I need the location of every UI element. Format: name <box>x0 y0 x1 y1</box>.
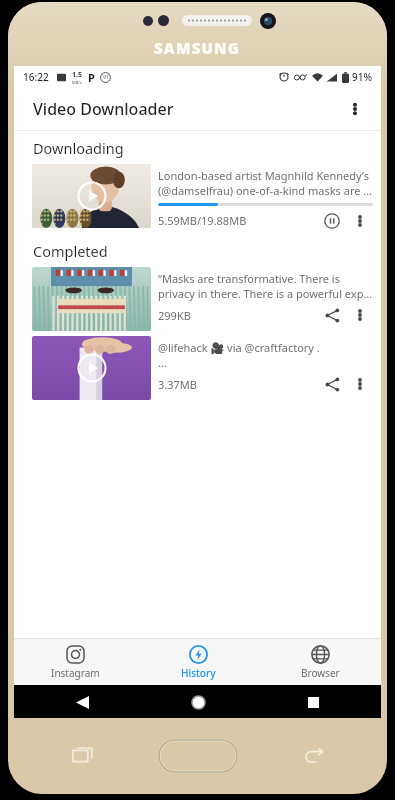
button[interactable]: More options <box>347 302 373 328</box>
button[interactable]: Browser <box>259 639 381 685</box>
button[interactable]: History <box>137 639 259 685</box>
staticText: “Masks are transformative. There is priv… <box>158 271 373 301</box>
staticText: Completed <box>33 241 108 261</box>
staticText: London-based artist Magnhild Kennedy’s (… <box>158 168 373 198</box>
staticText: 91 <box>103 74 109 81</box>
button[interactable]: More options <box>347 371 373 397</box>
button[interactable]: Pause <box>319 212 345 229</box>
button[interactable]: Recents <box>301 690 325 714</box>
button[interactable]: Back <box>70 690 94 714</box>
staticText: SAMSUNG <box>154 38 241 58</box>
staticText: 91% <box>352 70 372 84</box>
staticText: Video Downloader <box>33 98 174 120</box>
button[interactable]: Share <box>319 302 345 328</box>
button[interactable]: Recents <box>70 743 96 769</box>
staticText: Browser <box>301 666 340 680</box>
button[interactable]: @lifehack 🎥 via @craftfactory . … <box>18 335 377 401</box>
staticText: 16:22 <box>23 70 49 84</box>
button[interactable]: Home <box>186 690 210 714</box>
button[interactable]: London-based artist Magnhild Kennedy’s (… <box>18 163 377 229</box>
staticText: 5.59MB/19.88MB <box>158 213 247 228</box>
staticText: P <box>88 70 95 85</box>
staticText: Instagram <box>51 666 100 680</box>
button[interactable]: More options <box>337 91 373 127</box>
staticText: 299KB <box>158 308 191 323</box>
button[interactable]: Share <box>319 371 345 397</box>
staticText: 3.37MB <box>158 377 197 392</box>
staticText: @lifehack 🎥 via @craftfactory . … <box>158 340 320 370</box>
staticText: 1.5 <box>72 70 82 80</box>
staticText: History <box>181 666 216 680</box>
button[interactable]: Instagram <box>14 639 137 685</box>
button[interactable]: Home <box>158 739 238 773</box>
button[interactable]: More options <box>347 212 373 229</box>
button[interactable]: Back <box>301 743 327 769</box>
staticText: MB/s <box>72 80 82 85</box>
button[interactable]: “Masks are transformative. There is priv… <box>18 266 377 332</box>
staticText: Downloading <box>33 138 124 158</box>
